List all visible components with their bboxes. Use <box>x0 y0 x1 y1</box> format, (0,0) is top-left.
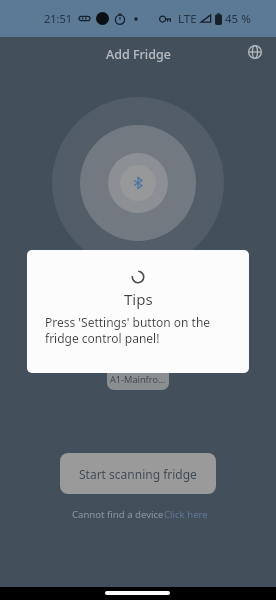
staticText: Tips <box>124 289 153 309</box>
staticText: 21:51 <box>44 11 73 26</box>
button[interactable]: Language <box>244 41 266 63</box>
button[interactable]: Add Fridge <box>106 46 171 63</box>
staticText: A1-Mainfro… <box>110 373 166 386</box>
button[interactable]: Click here <box>164 508 208 521</box>
staticText: 45 % <box>225 11 251 27</box>
staticText: Cannot find a device <box>72 508 164 521</box>
staticText: Press 'Settings' button on the fridge co… <box>45 314 231 346</box>
staticText: Start scanning fridge <box>79 466 197 482</box>
button[interactable]: A1-Mainfro… <box>107 364 169 390</box>
staticText: Add Fridge <box>106 46 171 63</box>
button[interactable]: Start scanning fridge <box>60 453 216 494</box>
staticText: LTE <box>178 11 197 27</box>
staticText: Click here <box>164 508 208 521</box>
